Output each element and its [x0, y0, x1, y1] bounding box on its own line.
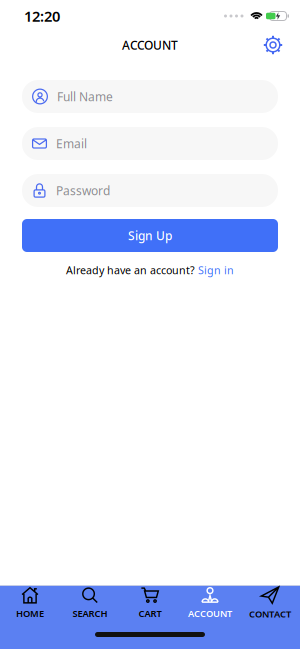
staticText: Full Name — [57, 88, 113, 104]
button[interactable]: Settings — [261, 33, 285, 57]
button[interactable]: HOME — [0, 585, 60, 621]
staticText: Already have an account? — [66, 263, 195, 277]
staticText: Sign Up — [128, 227, 172, 243]
button[interactable]: Sign Up — [22, 219, 278, 252]
staticText: ACCOUNT — [122, 37, 178, 53]
staticText: Password — [56, 182, 110, 198]
staticText: SEARCH — [72, 607, 107, 620]
staticText: CONTACT — [249, 608, 291, 620]
staticText: 12:20 — [24, 6, 60, 26]
button[interactable]: Sign in — [198, 263, 234, 277]
staticText: HOME — [16, 607, 44, 620]
staticText: CART — [138, 607, 161, 620]
button[interactable]: CART — [120, 585, 180, 621]
button[interactable]: ACCOUNT — [180, 585, 240, 621]
button[interactable]: CONTACT — [240, 585, 300, 621]
staticText: ACCOUNT — [188, 607, 232, 620]
staticText: Sign in — [198, 263, 234, 277]
button[interactable]: SEARCH — [60, 585, 120, 621]
staticText: Email — [56, 135, 87, 151]
